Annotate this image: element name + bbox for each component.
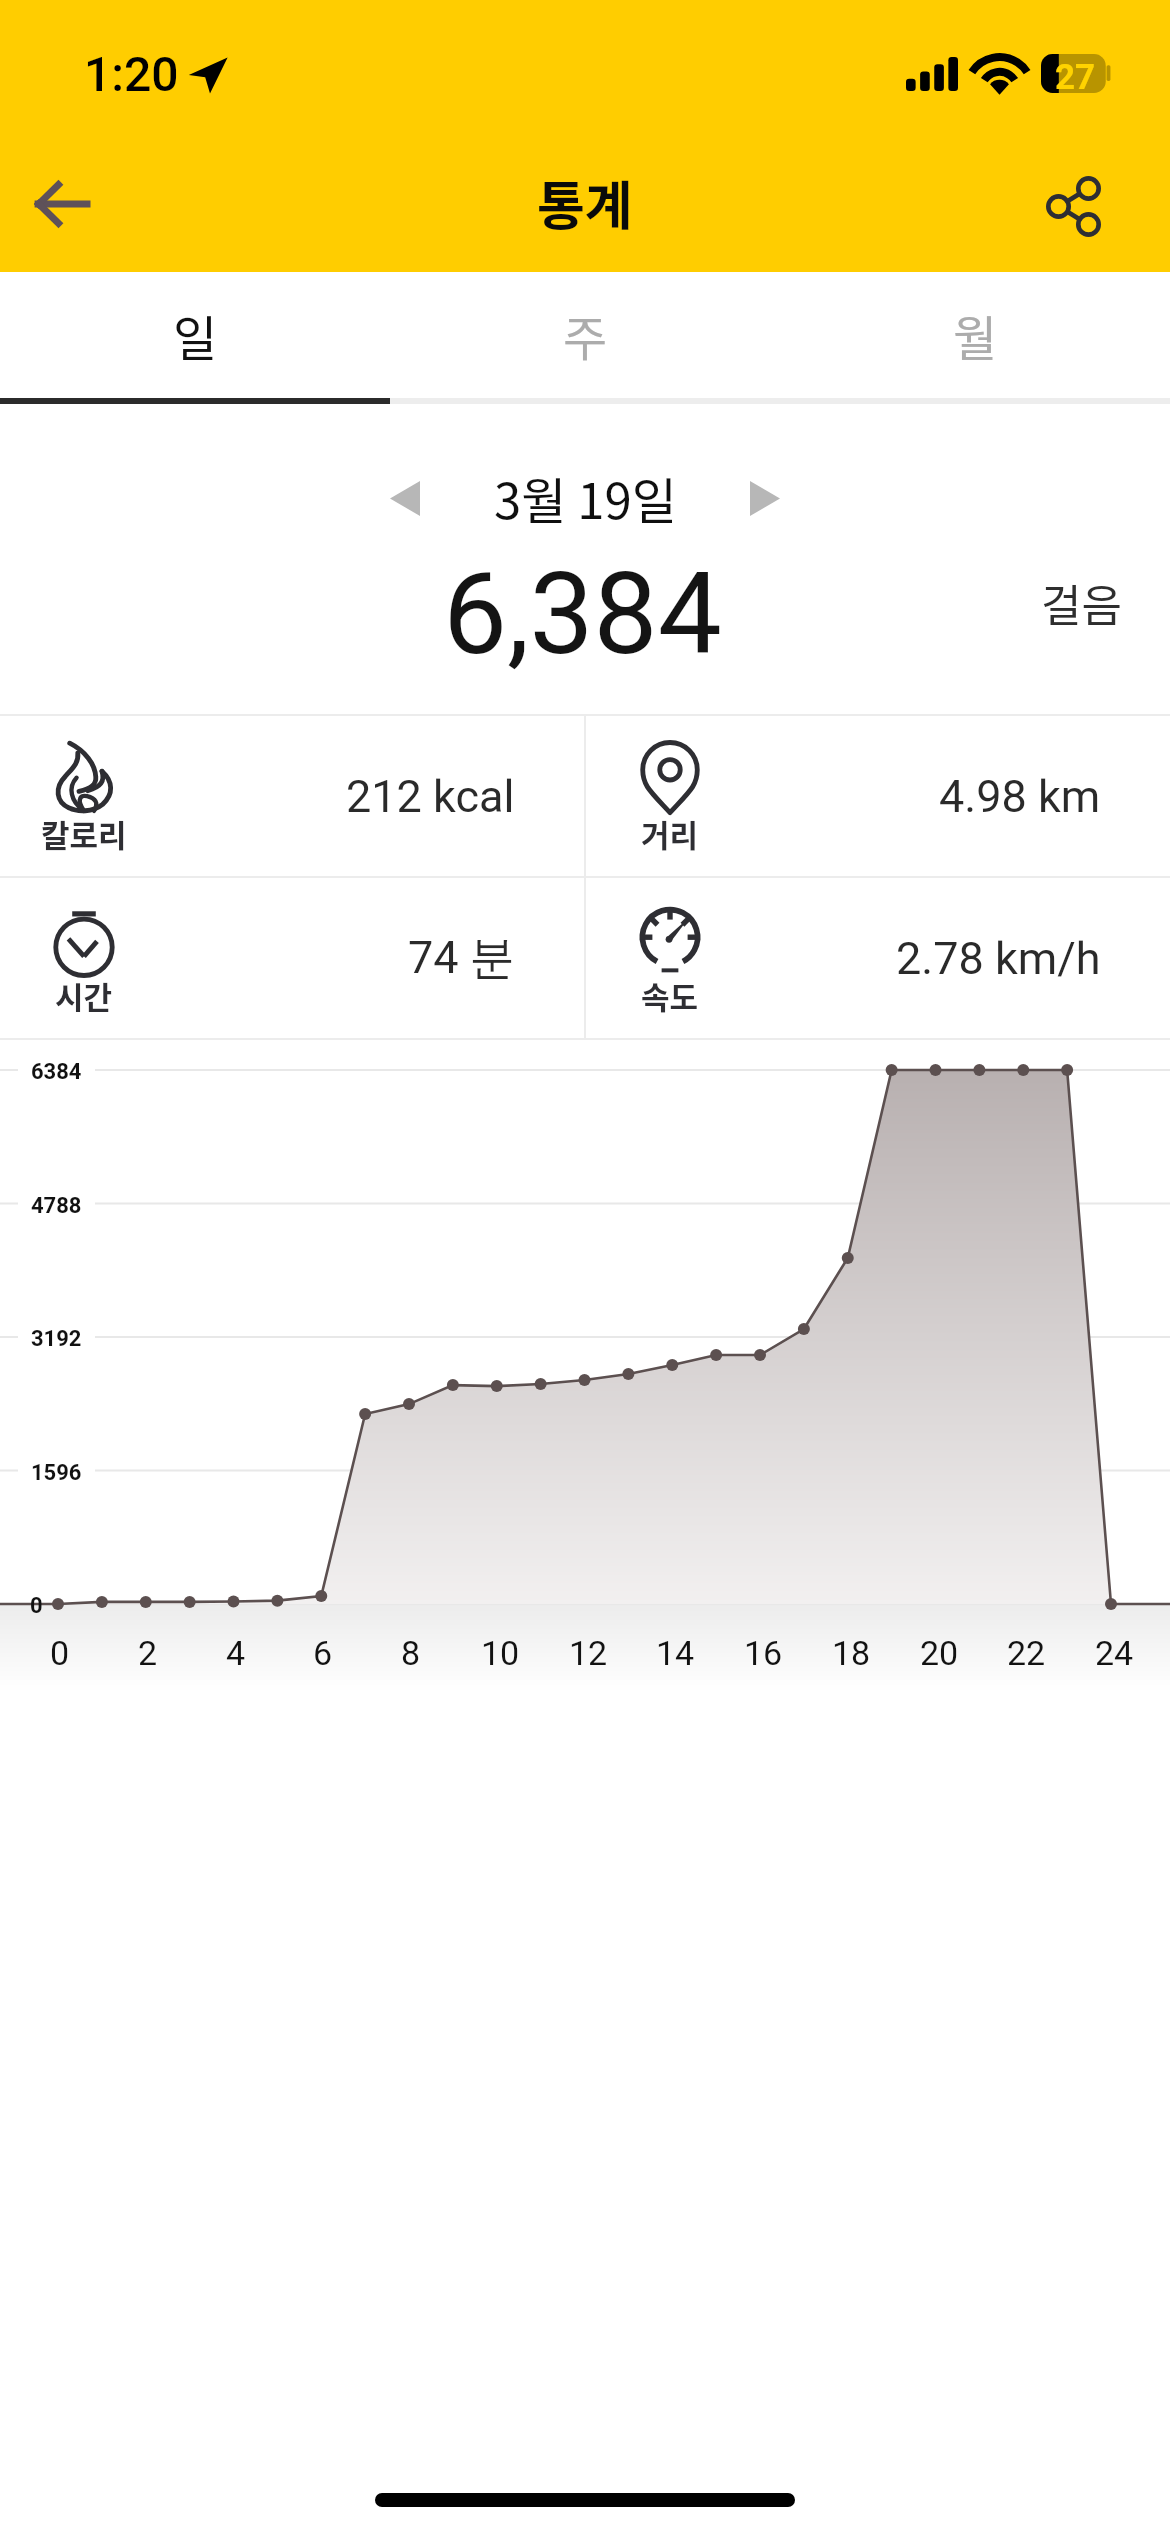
staticText: 거리 [641,811,699,856]
staticText: 2 [138,1633,158,1673]
staticText: 속도 [641,973,699,1018]
staticText: 주 [563,300,608,370]
staticText: 1:20 [84,46,179,102]
button[interactable]: 주 [390,272,780,342]
staticText: 212 kcal [346,770,515,823]
staticText: 6384 [31,1059,82,1085]
staticText: 27 [1055,57,1096,96]
staticText: 14 [656,1633,695,1673]
button[interactable]: 거리 [586,716,1170,876]
staticText: 걸음 [1041,571,1122,635]
staticText: 16 [744,1633,783,1673]
staticText: 4788 [31,1193,82,1219]
button[interactable]: 일 [0,272,390,342]
staticText: 12 [569,1633,608,1673]
staticText: 0 [30,1593,43,1619]
staticText: 0 [50,1633,70,1673]
staticText: 2.78 km/h [896,932,1101,985]
button[interactable]: 월 [780,272,1170,342]
button[interactable]: Next day [718,455,812,541]
staticText: 10 [481,1633,520,1673]
button[interactable]: 칼로리 [0,716,584,876]
staticText: 칼로리 [41,811,127,856]
staticText: 1596 [31,1460,82,1486]
staticText: 월 [953,300,998,370]
staticText: 시간 [55,973,113,1018]
staticText: 22 [1007,1633,1046,1673]
staticText: 18 [832,1633,871,1673]
staticText: 24 [1095,1633,1134,1673]
button[interactable]: Back [2,138,122,268]
staticText: 8 [401,1633,421,1673]
staticText: 4 [226,1633,246,1673]
button[interactable]: Share [1040,138,1170,268]
button[interactable]: 시간 [0,878,584,1038]
staticText: 3월 19일 [494,462,677,533]
staticText: 일 [173,300,218,370]
staticText: 3192 [31,1326,82,1352]
staticText: 74 분 [408,930,515,987]
staticText: 6 [313,1633,333,1673]
staticText: 통계 [537,165,633,240]
button[interactable]: Previous day [358,455,452,541]
button[interactable]: 속도 [586,878,1170,1038]
staticText: 6,384 [443,547,722,681]
staticText: 20 [920,1633,959,1673]
staticText: 4.98 km [939,770,1101,823]
